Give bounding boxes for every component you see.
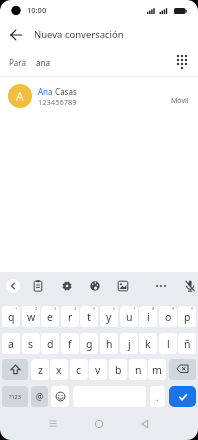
staticText: g — [86, 337, 93, 351]
staticText: 5 — [93, 306, 96, 311]
staticText: ?123 — [9, 393, 21, 400]
button[interactable] — [169, 386, 196, 407]
button[interactable] — [116, 279, 130, 293]
button[interactable] — [2, 359, 28, 380]
staticText: A — [16, 88, 24, 104]
button[interactable]: r — [61, 306, 79, 327]
button[interactable] — [60, 279, 74, 293]
button[interactable]: n — [129, 359, 147, 380]
button[interactable]: v — [89, 359, 107, 380]
staticText: 0 — [191, 306, 194, 311]
staticText: ana — [36, 57, 50, 68]
button[interactable]: b — [109, 359, 127, 380]
staticText: o — [165, 310, 172, 324]
staticText: p — [184, 310, 191, 324]
button[interactable] — [88, 279, 102, 293]
staticText: v — [95, 363, 101, 377]
button[interactable]: s — [22, 333, 40, 354]
staticText: e — [47, 310, 53, 324]
button[interactable]: k — [139, 333, 157, 354]
staticText: ñ — [184, 337, 191, 351]
staticText: t — [87, 310, 91, 324]
button[interactable]: q — [2, 306, 20, 327]
staticText: Casas — [53, 86, 77, 97]
button[interactable] — [137, 416, 153, 432]
button[interactable]: ?123 — [2, 386, 28, 407]
staticText: 8 — [152, 306, 155, 311]
button[interactable]: i — [139, 306, 157, 327]
staticText: s — [28, 337, 34, 351]
staticText: r — [68, 310, 73, 324]
staticText: i — [147, 310, 150, 324]
staticText: @ — [36, 391, 44, 402]
button[interactable]: ñ — [178, 333, 196, 354]
staticText: c — [76, 363, 82, 377]
button[interactable]: g — [80, 333, 98, 354]
staticText: Ana — [38, 86, 53, 97]
staticText: 10:00 — [27, 5, 47, 15]
staticText: l — [167, 337, 170, 351]
staticText: d — [47, 337, 54, 351]
staticText: Móvil — [171, 96, 189, 106]
staticText: 7 — [133, 306, 136, 311]
staticText: a — [8, 337, 14, 351]
staticText: x — [56, 363, 62, 377]
button[interactable] — [172, 52, 192, 72]
button[interactable]: f — [61, 333, 79, 354]
button[interactable]: h — [100, 333, 118, 354]
staticText: 123456789 — [38, 97, 77, 107]
staticText: 6 — [113, 306, 116, 311]
button[interactable]: @ — [31, 386, 48, 407]
button[interactable]: t — [80, 306, 98, 327]
button[interactable] — [183, 279, 197, 293]
button[interactable]: o — [159, 306, 177, 327]
staticText: z — [38, 363, 43, 377]
staticText: . — [156, 391, 159, 403]
button[interactable]: l — [159, 333, 177, 354]
button[interactable]: e — [41, 306, 59, 327]
button[interactable]: c — [70, 359, 88, 380]
staticText: b — [115, 363, 122, 377]
button[interactable]: z — [31, 359, 49, 380]
button[interactable]: m — [148, 359, 166, 380]
staticText: 2 — [35, 306, 38, 311]
button[interactable]: w — [22, 306, 40, 327]
button[interactable] — [45, 416, 61, 432]
staticText: k — [145, 337, 151, 351]
button[interactable]: A — [0, 80, 198, 114]
staticText: 1 — [15, 306, 18, 311]
button[interactable] — [154, 279, 168, 293]
staticText: j — [128, 337, 131, 351]
button[interactable]: j — [120, 333, 138, 354]
button[interactable] — [6, 27, 26, 43]
staticText: 3 — [54, 306, 57, 311]
button[interactable] — [91, 416, 107, 432]
button[interactable]: p — [178, 306, 196, 327]
staticText: n — [135, 363, 142, 377]
button[interactable]: u — [120, 306, 138, 327]
button[interactable] — [169, 359, 196, 380]
button[interactable]: a — [2, 333, 20, 354]
staticText: y — [106, 310, 112, 324]
button[interactable]: x — [50, 359, 68, 380]
staticText: m — [152, 363, 162, 377]
staticText: Nueva conversación — [34, 28, 124, 41]
button[interactable] — [51, 386, 69, 407]
staticText: 9 — [172, 306, 175, 311]
button[interactable]: y — [100, 306, 118, 327]
button[interactable]: d — [41, 333, 59, 354]
button[interactable] — [6, 279, 20, 293]
staticText: u — [126, 310, 133, 324]
staticText: Para — [9, 57, 26, 68]
staticText: w — [27, 310, 36, 324]
staticText: 4 — [74, 306, 77, 311]
button[interactable]: . — [150, 386, 165, 407]
staticText: q — [8, 310, 15, 324]
button[interactable] — [31, 279, 45, 293]
staticText: h — [106, 337, 113, 351]
staticText: f — [68, 337, 72, 351]
